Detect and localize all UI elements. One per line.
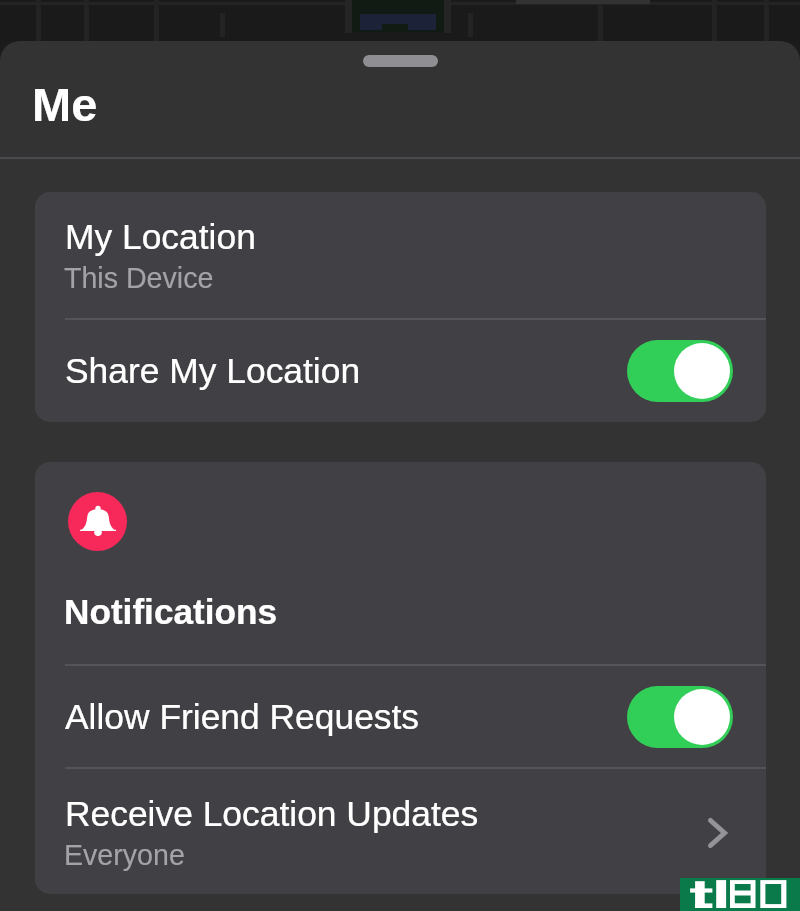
button[interactable]: Share My Location bbox=[35, 320, 766, 422]
button[interactable]: Allow Friend Requests bbox=[35, 666, 766, 767]
staticText: Receive Location Updates bbox=[65, 794, 479, 834]
staticText: This Device bbox=[64, 262, 214, 294]
staticText: Notifications bbox=[64, 592, 278, 631]
button[interactable]: Toggle bbox=[627, 340, 733, 402]
button[interactable]: Toggle bbox=[627, 686, 733, 748]
staticText: Share My Location bbox=[65, 351, 361, 391]
staticText: Everyone bbox=[64, 839, 185, 871]
staticText: My Location bbox=[65, 217, 256, 257]
staticText: Allow Friend Requests bbox=[65, 697, 420, 737]
button[interactable]: Receive Location Updates bbox=[35, 769, 766, 894]
button[interactable]: My Location bbox=[35, 192, 766, 318]
staticText: Me bbox=[32, 78, 98, 131]
other: Notifications bbox=[68, 492, 127, 551]
